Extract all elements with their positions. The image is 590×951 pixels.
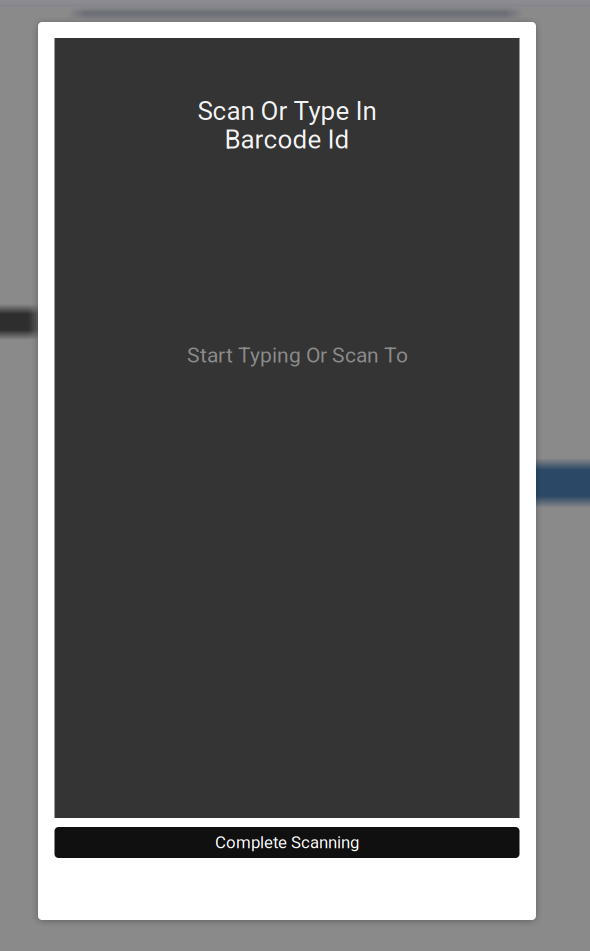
button[interactable]: Scan Or Type In (54, 38, 519, 818)
staticText: Start Typing Or Scan To (187, 343, 408, 368)
staticText: Barcode Id (224, 124, 349, 155)
button[interactable]: Complete Scanning (54, 827, 519, 858)
staticText: Scan Or Type In (197, 96, 376, 126)
staticText: Complete Scanning (215, 833, 359, 852)
